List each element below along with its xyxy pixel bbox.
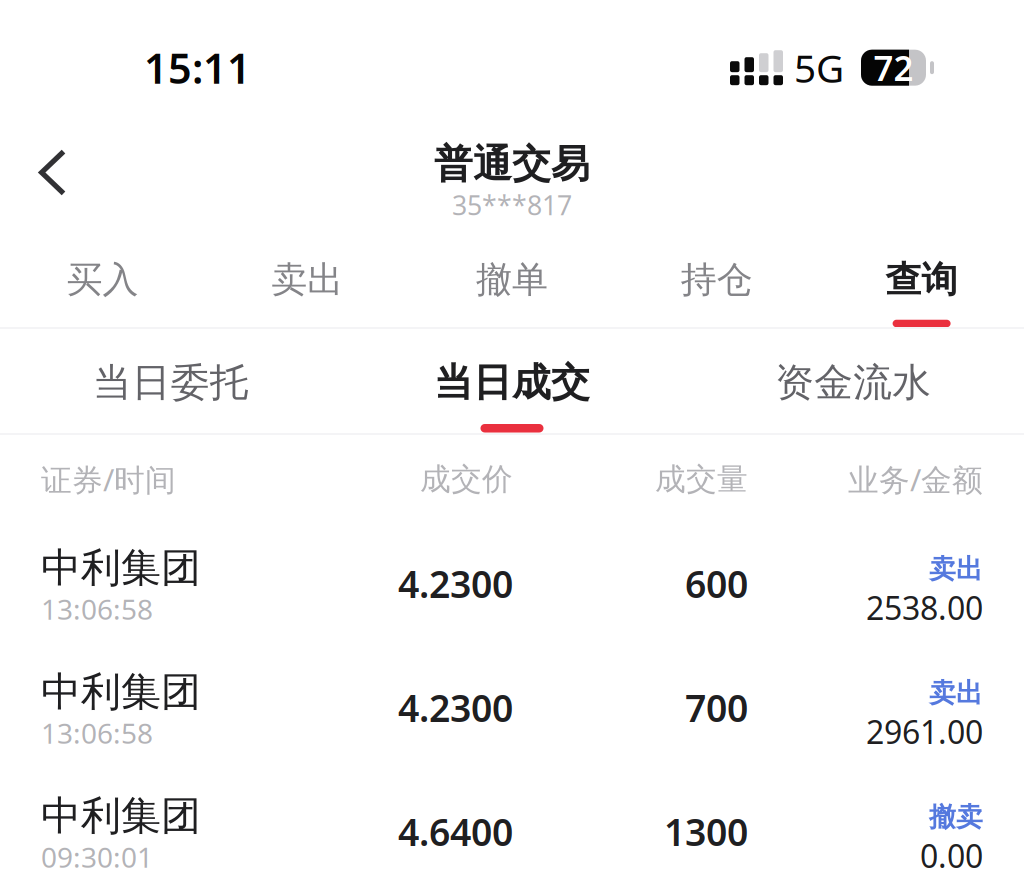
staticText: 4.2300	[398, 683, 513, 732]
staticText: 700	[685, 683, 748, 732]
staticText: 当日委托	[93, 359, 249, 406]
staticText: 普通交易	[434, 140, 590, 188]
staticText: 业务/金额	[848, 459, 983, 500]
staticText: 72	[873, 45, 913, 91]
staticText: 5G	[794, 42, 844, 93]
staticText: 中利集团	[41, 543, 201, 592]
staticText: 09:30:01	[41, 838, 153, 876]
staticText: 1300	[664, 807, 748, 856]
button[interactable]: 资金流水	[683, 329, 1024, 433]
staticText: 资金流水	[775, 359, 931, 406]
staticText: 中利集团	[41, 667, 201, 716]
staticText: 15:11	[144, 40, 251, 95]
staticText: 4.6400	[398, 807, 513, 856]
button[interactable]: 中利集团	[0, 634, 1024, 758]
button[interactable]: 持仓	[614, 220, 819, 327]
staticText: 查询	[886, 258, 958, 302]
staticText: 证券/时间	[41, 459, 176, 500]
staticText: 13:06:58	[41, 714, 153, 752]
button[interactable]: 当日成交	[341, 329, 683, 433]
staticText: 卖出	[929, 553, 983, 585]
button[interactable]: 中利集团	[0, 510, 1024, 634]
staticText: 成交量	[655, 460, 748, 498]
button[interactable]: 撤单	[410, 220, 614, 327]
staticText: 2538.00	[866, 586, 983, 629]
staticText: 35***817	[452, 187, 572, 223]
staticText: 卖出	[929, 677, 983, 709]
button[interactable]: 查询	[819, 220, 1024, 327]
staticText: 成交价	[420, 460, 513, 498]
staticText: 中利集团	[41, 791, 201, 840]
button[interactable]: Back	[0, 132, 99, 214]
staticText: 撤单	[476, 258, 548, 302]
staticText: 当日成交	[434, 359, 590, 406]
staticText: 持仓	[681, 258, 753, 302]
staticText: 0.00	[920, 834, 983, 877]
staticText: 13:06:58	[41, 590, 153, 628]
button[interactable]: 买入	[0, 220, 205, 327]
staticText: 撤卖	[929, 801, 983, 833]
staticText: 买入	[66, 258, 138, 302]
button[interactable]: 卖出	[205, 220, 410, 327]
button[interactable]: 当日委托	[0, 329, 341, 433]
staticText: 卖出	[271, 258, 343, 302]
staticText: 600	[685, 559, 748, 608]
staticText: 2961.00	[866, 710, 983, 753]
button[interactable]: 中利集团	[0, 758, 1024, 882]
staticText: 4.2300	[398, 559, 513, 608]
